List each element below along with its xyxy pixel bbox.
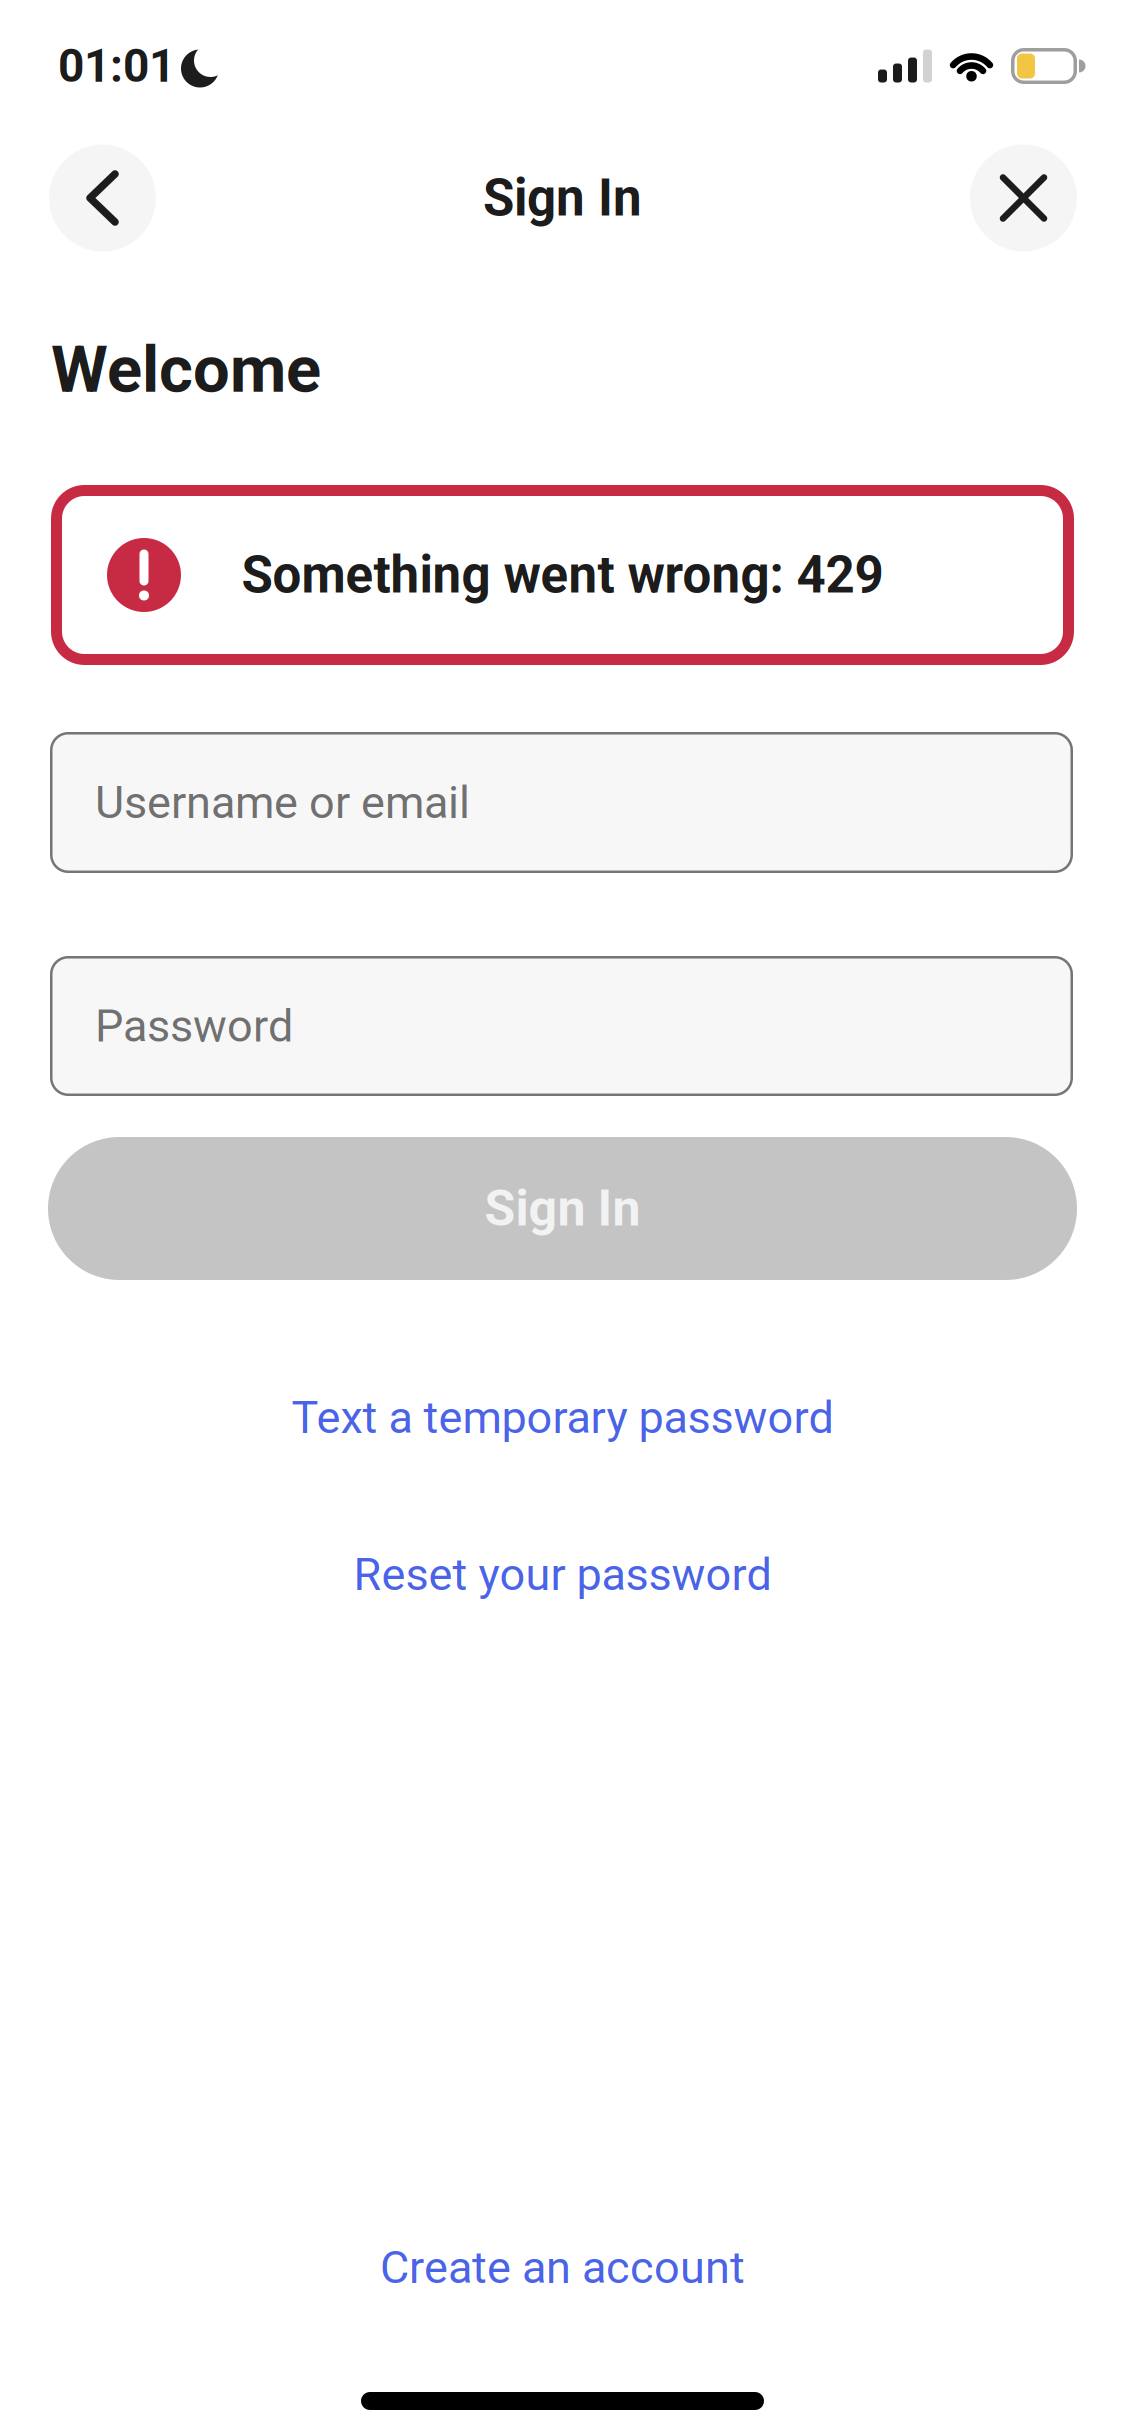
button[interactable]: Text a temporary password [291, 1390, 833, 1445]
button[interactable]: Password [0, 956, 1125, 1096]
staticText: Sign In [483, 168, 642, 228]
button[interactable] [49, 144, 156, 251]
staticText: Password [95, 1000, 293, 1052]
staticText: 01:01 [58, 39, 175, 93]
button[interactable]: Username or email [0, 732, 1125, 873]
staticText: Welcome [51, 331, 321, 408]
button[interactable]: Sign In [0, 1137, 1125, 1280]
staticText: Create an account [380, 2241, 745, 2294]
staticText: Sign In [484, 1179, 640, 1238]
staticText: Text a temporary password [291, 1391, 833, 1444]
staticText: Reset your password [353, 1548, 771, 1601]
button[interactable]: Create an account [380, 2240, 745, 2295]
staticText: Something went wrong: 429 [241, 545, 883, 605]
staticText: Username or email [95, 776, 470, 829]
button[interactable]: Reset your password [353, 1547, 771, 1602]
button[interactable] [970, 144, 1077, 251]
